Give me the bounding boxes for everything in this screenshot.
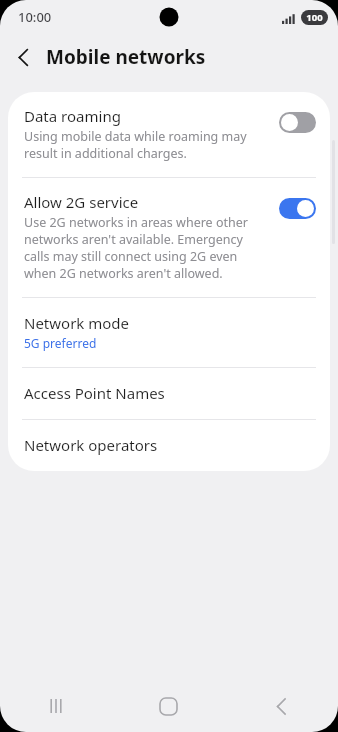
button[interactable]: Data roaming off xyxy=(279,112,316,133)
button[interactable]: Home xyxy=(112,680,225,732)
staticText: Network mode xyxy=(24,313,130,333)
staticText: Use 2G networks in areas where other net… xyxy=(24,214,269,282)
staticText: Allow 2G service xyxy=(24,192,139,212)
button[interactable]: Access Point Names xyxy=(8,368,330,419)
button[interactable]: Back xyxy=(225,680,338,732)
staticText: Mobile networks xyxy=(46,44,206,70)
button[interactable]: Allow 2G service on xyxy=(279,198,316,219)
button[interactable]: Back xyxy=(0,34,46,80)
staticText: Network operators xyxy=(24,435,158,455)
button[interactable]: Recent apps xyxy=(0,680,112,732)
button[interactable]: Allow 2G service xyxy=(8,178,330,297)
button[interactable]: Data roaming xyxy=(8,92,330,177)
button[interactable]: Network operators xyxy=(8,420,330,471)
staticText: Access Point Names xyxy=(24,383,165,403)
staticText: 10:00 xyxy=(18,8,52,26)
button[interactable]: Network mode xyxy=(8,298,330,367)
staticText: 100 xyxy=(306,11,323,24)
staticText: Using mobile data while roaming may resu… xyxy=(24,128,269,162)
staticText: Data roaming xyxy=(24,106,121,126)
staticText: 5G preferred xyxy=(24,335,97,351)
